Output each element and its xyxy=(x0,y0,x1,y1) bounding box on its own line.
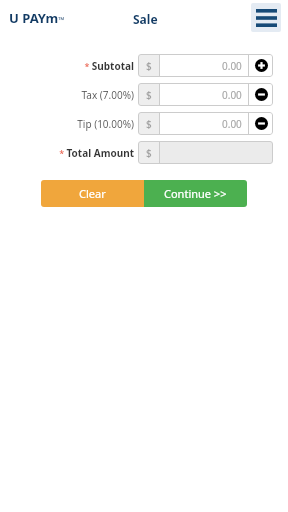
button[interactable]: Remove Tip (10.00%) xyxy=(249,112,273,135)
staticText: 0.00 xyxy=(222,59,242,73)
button[interactable]: Menu xyxy=(251,3,281,32)
staticText: $ xyxy=(146,117,152,131)
staticText: $ xyxy=(146,88,152,102)
button[interactable] xyxy=(160,141,273,164)
staticText: Sale xyxy=(133,11,158,27)
staticText: * Subtotal xyxy=(84,59,134,73)
button[interactable]: Remove Tax (7.00%) xyxy=(249,83,273,106)
staticText: $ xyxy=(146,146,152,160)
button[interactable]: 0.00 xyxy=(160,83,248,106)
button[interactable]: Add Subtotal xyxy=(249,54,273,77)
staticText: Continue >> xyxy=(164,186,227,201)
button[interactable]: Continue >> xyxy=(144,180,247,207)
button[interactable]: 0.00 xyxy=(160,112,248,135)
staticText: 0.00 xyxy=(222,88,242,102)
button[interactable]: U PAYm™ xyxy=(9,9,65,27)
staticText: * Total Amount xyxy=(59,146,134,160)
button[interactable]: 0.00 xyxy=(160,54,248,77)
staticText: 0.00 xyxy=(222,117,242,131)
staticText: $ xyxy=(146,59,152,73)
staticText: Clear xyxy=(79,186,106,201)
staticText: Tax (7.00%) xyxy=(81,88,134,102)
staticText: Tip (10.00%) xyxy=(77,117,134,131)
button[interactable]: Clear xyxy=(41,180,144,207)
